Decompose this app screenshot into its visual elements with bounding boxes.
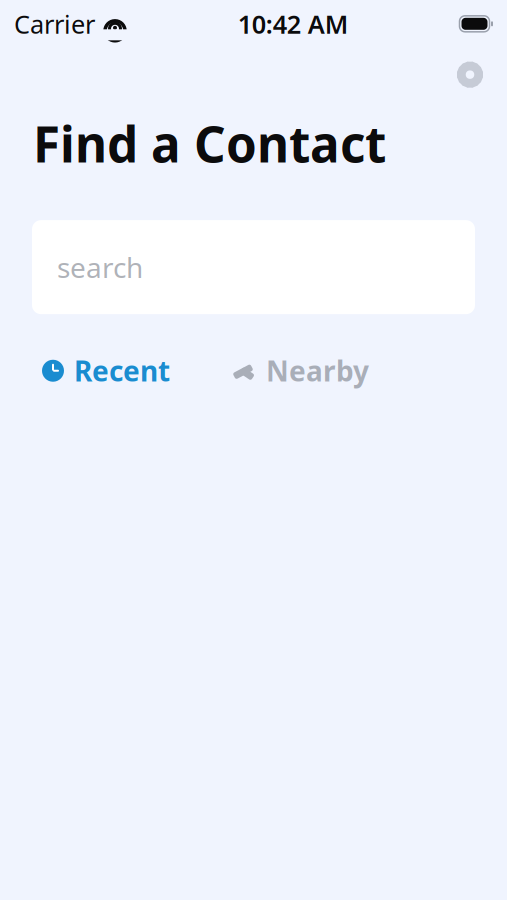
button[interactable]: Settings [448, 53, 492, 97]
button[interactable]: Recent [42, 344, 170, 397]
staticText: Recent [74, 352, 170, 389]
staticText: Nearby [266, 352, 369, 389]
staticText: search [57, 249, 143, 286]
staticText: Find a Contact [33, 111, 386, 176]
button[interactable]: Nearby [232, 344, 369, 397]
button[interactable]: search [32, 220, 475, 314]
staticText: 10:42 AM [238, 7, 349, 41]
staticText: Carrier [14, 7, 95, 41]
